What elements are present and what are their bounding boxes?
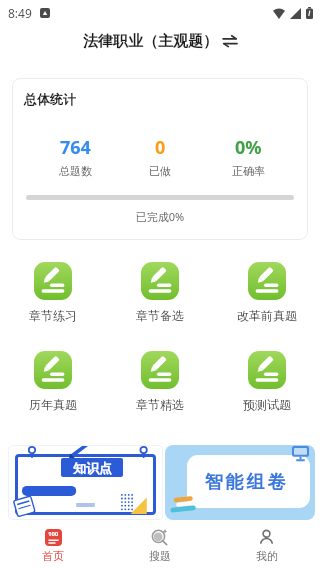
- staticText: 我的: [256, 549, 278, 563]
- button[interactable]: 预测试题: [213, 351, 320, 412]
- staticText: 0: [155, 135, 166, 160]
- staticText: 知识点: [73, 460, 112, 476]
- staticText: 章节备选: [136, 308, 184, 323]
- staticText: 764: [60, 135, 91, 160]
- staticText: 预测试题: [243, 397, 291, 412]
- button[interactable]: 智能组卷: [165, 445, 315, 520]
- staticText: 已做: [149, 164, 171, 178]
- button[interactable]: [223, 35, 237, 47]
- staticText: 智能组卷: [203, 471, 287, 494]
- staticText: 总体统计: [24, 91, 76, 107]
- staticText: 历年真题: [29, 397, 77, 412]
- staticText: 改革前真题: [237, 308, 297, 323]
- button[interactable]: 搜题: [106, 520, 213, 569]
- button[interactable]: 100: [0, 520, 106, 569]
- button[interactable]: 我的: [213, 520, 320, 569]
- staticText: 总题数: [59, 164, 92, 178]
- button[interactable]: 知识点: [8, 445, 163, 520]
- button[interactable]: 历年真题: [0, 351, 106, 412]
- staticText: 法律职业（主观题）: [83, 32, 218, 51]
- staticText: 正确率: [232, 164, 265, 178]
- staticText: 首页: [42, 549, 64, 563]
- staticText: 0%: [235, 135, 262, 160]
- button[interactable]: 章节精选: [106, 351, 213, 412]
- button[interactable]: 章节备选: [106, 262, 213, 323]
- staticText: 搜题: [149, 549, 171, 563]
- staticText: 章节精选: [136, 397, 184, 412]
- button[interactable]: 改革前真题: [213, 262, 320, 323]
- staticText: 章节练习: [29, 308, 77, 323]
- staticText: 100: [48, 530, 59, 538]
- staticText: 8:49: [8, 5, 32, 21]
- button[interactable]: 章节练习: [0, 262, 106, 323]
- staticText: 已完成0%: [12, 209, 308, 224]
